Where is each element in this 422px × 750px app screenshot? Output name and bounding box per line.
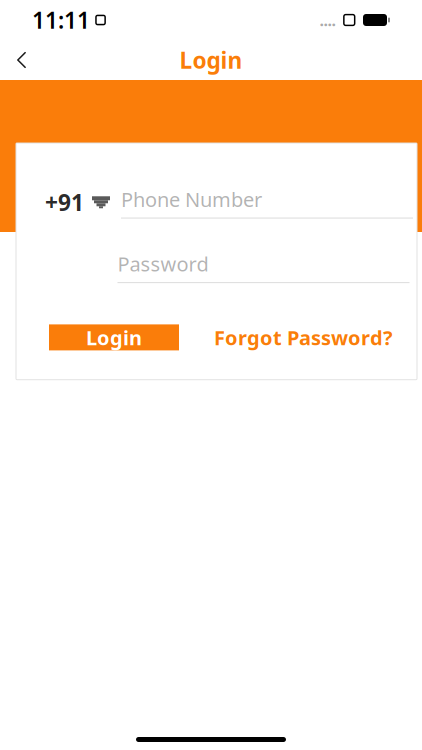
staticText: +91 bbox=[45, 187, 84, 217]
button[interactable]: Back bbox=[0, 40, 44, 80]
staticText: .... bbox=[319, 9, 335, 31]
staticText: Login bbox=[179, 45, 242, 75]
staticText: Forgot Password? bbox=[214, 324, 393, 351]
staticText: Phone Number bbox=[121, 186, 262, 213]
staticText: Password bbox=[117, 251, 208, 277]
button[interactable]: Forgot Password? bbox=[214, 324, 393, 351]
staticText: 11:11 bbox=[32, 5, 90, 35]
button[interactable]: Login bbox=[49, 324, 179, 350]
button[interactable]: Country code +91 bbox=[45, 187, 110, 217]
staticText: Login bbox=[86, 324, 142, 351]
